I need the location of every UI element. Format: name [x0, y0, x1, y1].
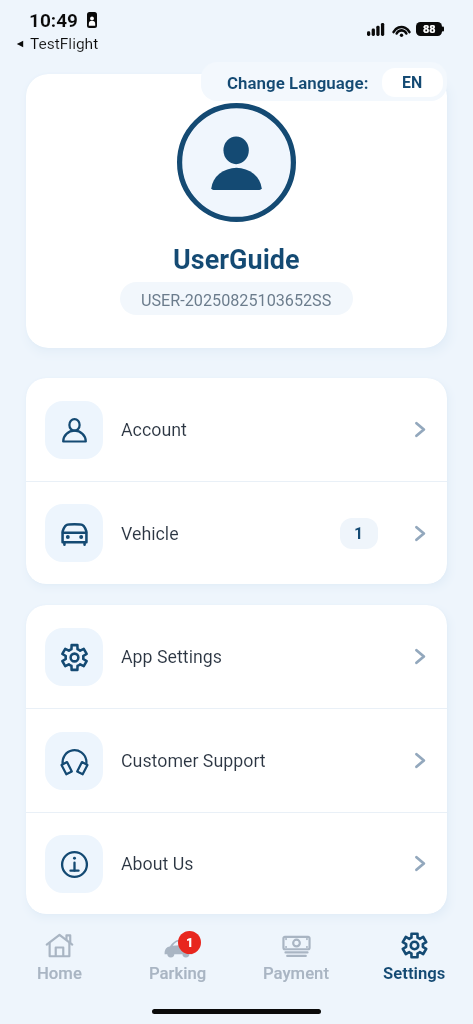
staticText: 88 [423, 23, 436, 36]
staticText: UserGuide [173, 244, 300, 276]
button[interactable]: Customer Support [26, 709, 447, 812]
button[interactable]: 1 [119, 925, 237, 990]
staticText: Account [121, 419, 187, 440]
button[interactable]: Change Language: [201, 62, 447, 101]
staticText: Home [37, 964, 82, 984]
button[interactable]: Payment [237, 925, 355, 990]
button[interactable]: Account [26, 378, 447, 481]
staticText: Settings [383, 964, 446, 984]
button[interactable]: Settings [355, 925, 473, 990]
button[interactable]: About Us [26, 813, 447, 914]
staticText: 10:49 [29, 9, 78, 31]
staticText: Payment [263, 964, 329, 984]
staticText: Vehicle [121, 523, 179, 544]
button[interactable]: Home [0, 925, 119, 990]
staticText: USER-20250825103652SS [141, 291, 332, 310]
staticText: App Settings [121, 646, 222, 667]
button[interactable]: Vehicle [26, 482, 447, 584]
staticText: TestFlight [30, 35, 99, 53]
staticText: 1 [186, 935, 194, 950]
staticText: Customer Support [121, 750, 266, 771]
staticText: 1 [354, 524, 364, 543]
button[interactable]: App Settings [26, 605, 447, 708]
staticText: EN [402, 73, 423, 92]
staticText: About Us [121, 853, 194, 874]
staticText: Change Language: [227, 73, 369, 93]
staticText: Parking [149, 964, 207, 984]
